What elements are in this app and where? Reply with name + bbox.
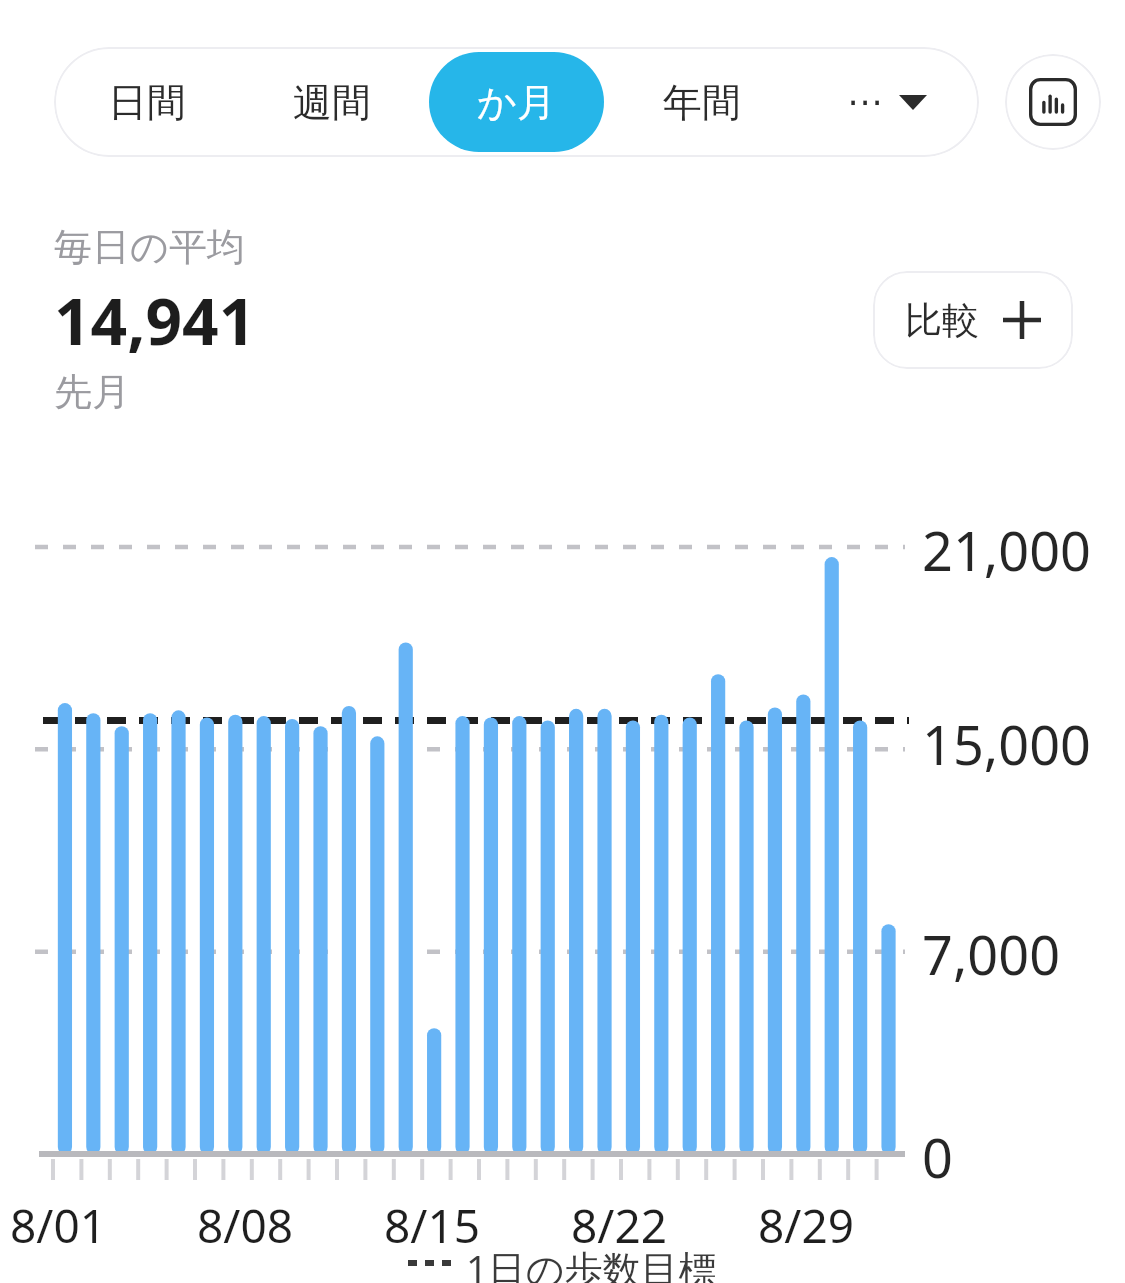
button[interactable]: 年間 [614,52,789,152]
staticText: 15,000 [922,707,1091,781]
button[interactable]: 日間 [59,52,234,152]
button[interactable]: か月 [429,52,604,152]
button[interactable]: Chart view [1005,54,1101,150]
staticText: 7,000 [922,917,1061,991]
staticText: 8/15 [384,1194,481,1257]
staticText: ⋯ [847,81,883,123]
staticText: 比較 [905,297,979,344]
button[interactable]: 比較 [873,271,1073,369]
staticText: 毎日の平均 [54,223,245,271]
staticText: か月 [477,78,556,127]
button[interactable]: More ranges [794,47,979,157]
staticText: 8/22 [571,1194,668,1257]
staticText: 21,000 [922,513,1091,587]
staticText: 8/08 [197,1194,294,1257]
staticText: 年間 [663,78,741,127]
staticText: 8/01 [10,1194,107,1257]
staticText: 8/29 [758,1194,855,1257]
staticText: 先月 [54,368,130,416]
staticText: 0 [922,1120,953,1194]
staticText: 1日の歩数目標 [466,1242,717,1283]
staticText: 日間 [108,78,186,127]
staticText: 週間 [293,78,371,127]
staticText: 14,941 [54,277,256,364]
button[interactable]: 週間 [244,52,419,152]
